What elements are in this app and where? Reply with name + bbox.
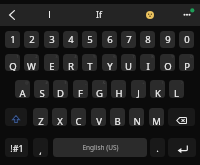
staticText: N	[133, 115, 141, 126]
staticText: _	[85, 80, 87, 86]
staticText: D	[57, 87, 64, 98]
button[interactable]: !#1	[5, 138, 28, 157]
button[interactable]: 1	[5, 31, 20, 48]
staticText: Q	[9, 60, 17, 71]
button[interactable]: Emoji	[141, 6, 159, 24]
button[interactable]: S	[34, 80, 49, 98]
staticText: 6	[107, 33, 113, 46]
staticText: If	[96, 9, 102, 21]
staticText: K	[155, 87, 161, 98]
staticText: 1	[10, 33, 16, 46]
button[interactable]: P	[179, 54, 194, 71]
button[interactable]: C	[71, 108, 86, 126]
button[interactable]: 8	[140, 31, 155, 48]
staticText: 4	[74, 54, 77, 60]
staticText: Z	[38, 115, 44, 126]
staticText: 8	[151, 54, 154, 60]
staticText: L	[174, 87, 179, 98]
staticText: )	[181, 80, 183, 86]
button[interactable]: J	[131, 80, 146, 98]
button[interactable]: A	[15, 80, 30, 98]
staticText: ,	[39, 144, 42, 157]
button[interactable]: F	[73, 80, 88, 98]
button[interactable]: K	[150, 80, 165, 98]
button[interactable]: 3	[44, 31, 59, 48]
staticText: -	[123, 80, 125, 86]
staticText: A	[19, 87, 26, 98]
button[interactable]: L	[169, 80, 184, 98]
staticText: !#1	[10, 142, 24, 154]
staticText: C	[75, 115, 82, 126]
staticText: English (US)	[82, 143, 119, 152]
button[interactable]: More options	[180, 6, 198, 24]
staticText: 0	[184, 33, 190, 46]
staticText: H	[115, 87, 123, 98]
button[interactable]: Enter	[168, 138, 196, 157]
staticText: P	[184, 60, 190, 71]
staticText: G	[96, 87, 103, 98]
staticText: @	[25, 80, 29, 86]
button[interactable]: G	[92, 80, 107, 98]
button[interactable]: 6	[102, 31, 117, 48]
staticText: 7	[132, 54, 135, 60]
staticText: .	[156, 142, 159, 155]
button[interactable]: B	[110, 108, 125, 126]
button[interactable]: R	[63, 54, 78, 71]
staticText: W	[27, 60, 36, 71]
button[interactable]: .	[150, 138, 165, 157]
button[interactable]: I	[140, 54, 155, 71]
button[interactable]: Backspace	[168, 108, 195, 126]
staticText: O	[164, 60, 172, 71]
button[interactable]: Q	[5, 54, 20, 71]
button[interactable]: ,	[33, 138, 48, 157]
button[interactable]: V	[91, 108, 106, 126]
staticText: &	[102, 80, 106, 86]
staticText: 6	[113, 54, 116, 60]
staticText: 5	[87, 33, 93, 46]
button[interactable]: 0	[179, 31, 194, 48]
staticText: $	[64, 80, 67, 86]
staticText: 2	[29, 33, 35, 46]
staticText: (	[162, 80, 164, 86]
staticText: V	[96, 115, 102, 126]
button[interactable]: N	[129, 108, 144, 126]
staticText: 8	[145, 33, 151, 46]
button[interactable]: E	[44, 54, 59, 71]
button[interactable]: Y	[102, 54, 117, 71]
button[interactable]: W	[24, 54, 39, 71]
button[interactable]: If	[88, 5, 110, 24]
staticText: U	[125, 60, 132, 71]
staticText: E	[49, 60, 55, 71]
staticText: 3	[49, 33, 55, 46]
staticText: 1	[16, 54, 19, 60]
button[interactable]: 7	[121, 31, 136, 48]
button[interactable]: 5	[82, 31, 97, 48]
button[interactable]: D	[53, 80, 68, 98]
button[interactable]: Z	[33, 108, 48, 126]
button[interactable]: Shift	[5, 108, 27, 126]
staticText: 0	[190, 54, 193, 60]
button[interactable]: 4	[63, 31, 78, 48]
staticText: T	[87, 60, 93, 71]
button[interactable]: M	[149, 108, 164, 126]
staticText: I	[146, 60, 150, 71]
button[interactable]: T	[82, 54, 97, 71]
button[interactable]: X	[52, 108, 67, 126]
staticText: Y	[107, 60, 113, 71]
button[interactable]: 9	[160, 31, 175, 48]
staticText: 7	[126, 33, 132, 46]
staticText: F	[78, 87, 83, 98]
button[interactable]: U	[121, 54, 136, 71]
button[interactable]: English (US)	[53, 138, 147, 157]
button[interactable]: 2	[24, 31, 39, 48]
staticText: 3	[55, 54, 58, 60]
staticText: 5	[93, 54, 96, 60]
button[interactable]: Back	[3, 6, 21, 24]
button[interactable]: H	[111, 80, 126, 98]
staticText: 9	[165, 33, 171, 46]
staticText: 4	[68, 33, 74, 46]
staticText: R	[68, 60, 74, 71]
button[interactable]: O	[160, 54, 175, 71]
staticText: #	[45, 80, 48, 86]
staticText: S	[39, 87, 45, 98]
